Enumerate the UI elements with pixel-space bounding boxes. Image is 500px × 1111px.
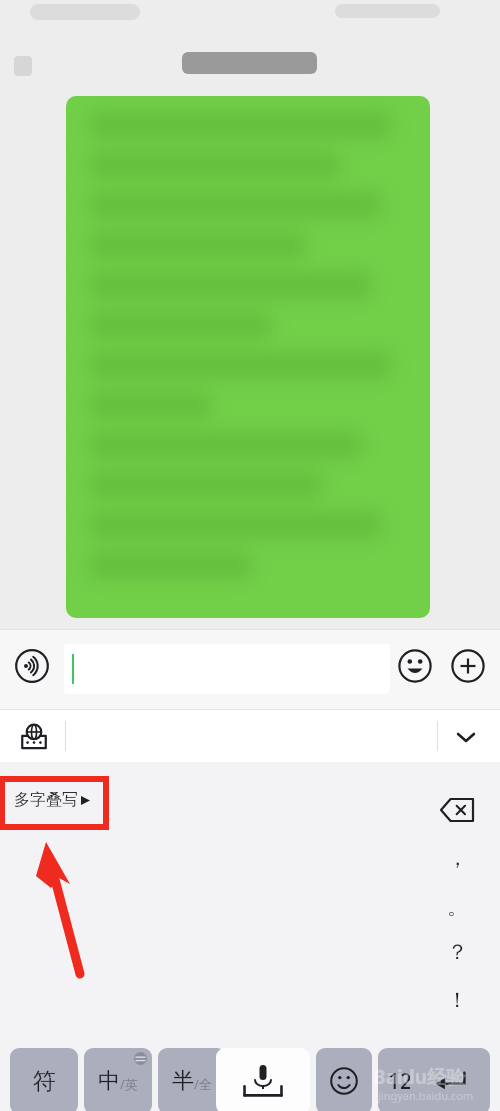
button[interactable]: Enter: [410, 1048, 490, 1111]
button[interactable]: Backspace: [434, 788, 480, 832]
button[interactable]: 多字叠写: [10, 790, 90, 810]
button[interactable]: Emoji keyboard: [316, 1048, 372, 1111]
button[interactable]: 123: [378, 1048, 434, 1111]
staticText: Baidu经验: [373, 1064, 466, 1090]
button[interactable]: 中: [84, 1048, 152, 1111]
button[interactable]: ，: [434, 838, 480, 878]
button[interactable]: Switch input method: [16, 719, 52, 755]
button[interactable]: [64, 644, 390, 694]
staticText: ，: [447, 845, 468, 871]
staticText: 多字叠写: [14, 790, 78, 810]
staticText: 中: [98, 1067, 120, 1095]
staticText: /全: [194, 1075, 212, 1093]
button[interactable]: Space: [216, 1048, 310, 1111]
staticText: /英: [120, 1075, 138, 1093]
staticText: 符: [33, 1067, 56, 1096]
button[interactable]: 符: [10, 1048, 78, 1111]
staticText: 。: [447, 894, 468, 920]
button[interactable]: 半: [158, 1048, 226, 1111]
button[interactable]: Emoji: [397, 648, 433, 684]
button[interactable]: ？: [434, 932, 480, 972]
button[interactable]: More: [450, 648, 486, 684]
button[interactable]: ！: [434, 980, 480, 1020]
staticText: ！: [447, 987, 468, 1013]
button[interactable]: 。: [434, 887, 480, 927]
button[interactable]: Voice input: [14, 648, 50, 684]
button[interactable]: Hide keyboard: [448, 719, 484, 755]
staticText: jingyan.baidu.com: [378, 1088, 474, 1103]
staticText: ？: [447, 939, 468, 965]
staticText: 123: [388, 1067, 425, 1096]
staticText: 半: [172, 1067, 194, 1095]
